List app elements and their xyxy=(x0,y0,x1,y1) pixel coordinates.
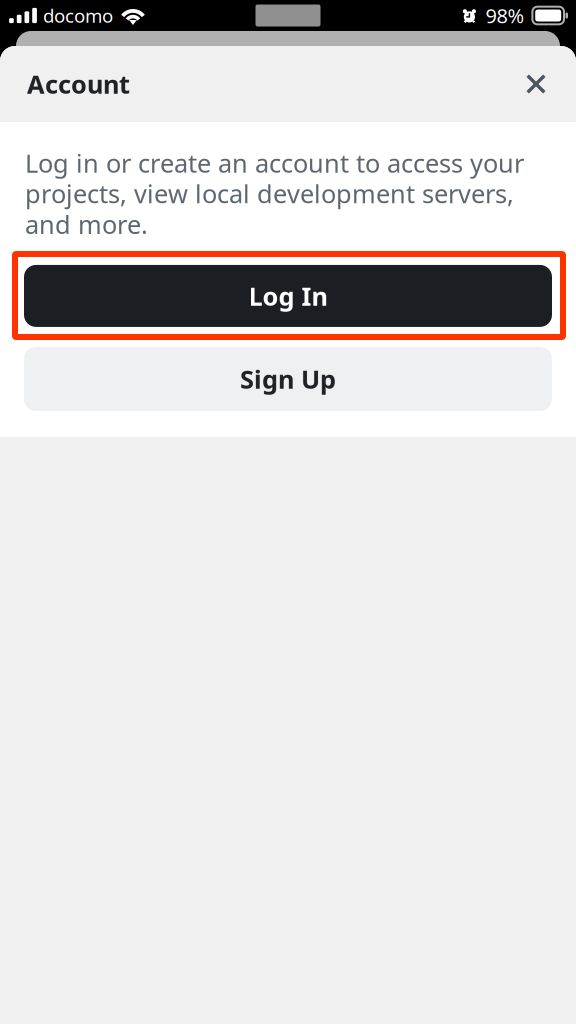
staticText: Log in or create an account to access yo… xyxy=(25,146,524,241)
button[interactable]: Sign Up xyxy=(24,347,552,411)
button[interactable]: Close xyxy=(508,56,564,112)
button[interactable]: Log In xyxy=(24,265,552,327)
staticText: Account xyxy=(27,67,130,101)
staticText: 98% xyxy=(485,2,524,29)
staticText: Log In xyxy=(248,279,327,313)
staticText: Sign Up xyxy=(240,362,336,396)
staticText: docomo xyxy=(43,3,113,28)
